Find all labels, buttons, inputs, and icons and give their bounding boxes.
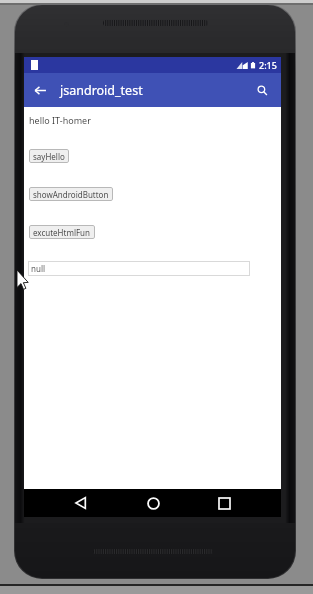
button[interactable]: Back: [27, 77, 53, 103]
staticText: hello IT-homer: [29, 114, 91, 126]
staticText: 2:15: [259, 59, 277, 71]
button[interactable]: excuteHtmlFun: [29, 225, 95, 239]
staticText: excuteHtmlFun: [33, 227, 91, 238]
button[interactable]: Home: [139, 489, 167, 517]
staticText: showAndroidButton: [33, 189, 109, 200]
staticText: null: [31, 263, 46, 274]
button[interactable]: sayHello: [29, 149, 69, 163]
button[interactable]: Recents: [210, 489, 238, 517]
button[interactable]: Search: [251, 79, 273, 101]
button[interactable]: showAndroidButton: [29, 187, 113, 201]
staticText: jsandroid_test: [60, 82, 143, 99]
button[interactable]: Back: [67, 489, 95, 517]
staticText: sayHello: [33, 151, 65, 162]
